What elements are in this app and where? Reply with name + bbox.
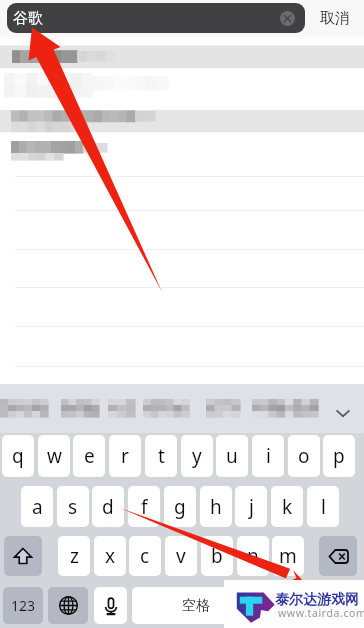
staticText: i [266,443,271,469]
button[interactable]: a [21,486,53,527]
staticText: p [333,443,345,469]
button[interactable]: m [272,536,304,576]
staticText: f [141,494,148,520]
button[interactable]: z [58,536,90,576]
button[interactable]: h [200,486,232,527]
button[interactable]: Clear text [280,11,295,26]
button[interactable]: 搜索 [265,587,359,624]
staticText: 泰尔达游戏网 [275,591,359,609]
staticText: n [247,543,259,569]
button[interactable]: l [307,486,339,527]
button[interactable]: Shift [4,536,42,576]
staticText: www.tairda.com [278,606,364,620]
staticText: z [70,543,79,569]
staticText: 取消 [320,9,350,28]
staticText: d [102,494,114,520]
button[interactable]: w [38,435,70,477]
button[interactable]: n [237,536,269,576]
staticText: o [298,443,310,469]
button[interactable]: v [165,536,197,576]
button[interactable]: Voice input [94,587,127,624]
staticText: c [140,543,150,569]
staticText: r [121,443,129,469]
staticText: k [282,494,293,520]
button[interactable]: t [145,435,177,477]
staticText: l [321,494,326,520]
staticText: h [210,494,222,520]
staticText: q [12,443,24,469]
staticText: 谷歌 [13,9,43,28]
button[interactable]: j [235,486,267,527]
button[interactable]: Backspace [319,536,357,576]
button[interactable]: 谷歌 [7,3,305,33]
button[interactable]: p [323,435,355,477]
button[interactable]: f [128,486,160,527]
staticText: x [105,543,116,569]
staticText: g [174,494,186,520]
button[interactable]: s [57,486,89,527]
button[interactable]: 空格 [132,587,260,624]
staticText: s [68,494,78,520]
staticText: t [158,443,165,469]
button[interactable]: o [288,435,320,477]
button[interactable]: r [109,435,141,477]
button[interactable]: b [201,536,233,576]
button[interactable]: e [73,435,105,477]
button[interactable]: c [129,536,161,576]
staticText: a [32,494,43,520]
staticText: 123 [11,596,36,615]
staticText: w [47,443,62,469]
staticText: b [211,543,223,569]
staticText: e [84,443,95,469]
button[interactable]: q [2,435,34,477]
staticText: u [226,443,238,469]
staticText: j [249,494,254,520]
button[interactable]: u [216,435,248,477]
button[interactable]: d [92,486,124,527]
staticText: 搜索 [298,597,326,615]
button[interactable]: y [181,435,213,477]
staticText: 空格 [182,597,210,615]
button[interactable]: x [94,536,126,576]
button[interactable]: i [252,435,284,477]
button[interactable]: 取消 [313,0,364,37]
button[interactable]: Hide predictions [334,404,352,422]
staticText: v [176,543,186,569]
button[interactable]: 123 [3,587,43,624]
staticText: y [192,443,202,469]
button[interactable]: g [164,486,196,527]
staticText: m [279,543,297,569]
button[interactable]: k [271,486,303,527]
button[interactable]: Switch keyboard [48,587,88,624]
